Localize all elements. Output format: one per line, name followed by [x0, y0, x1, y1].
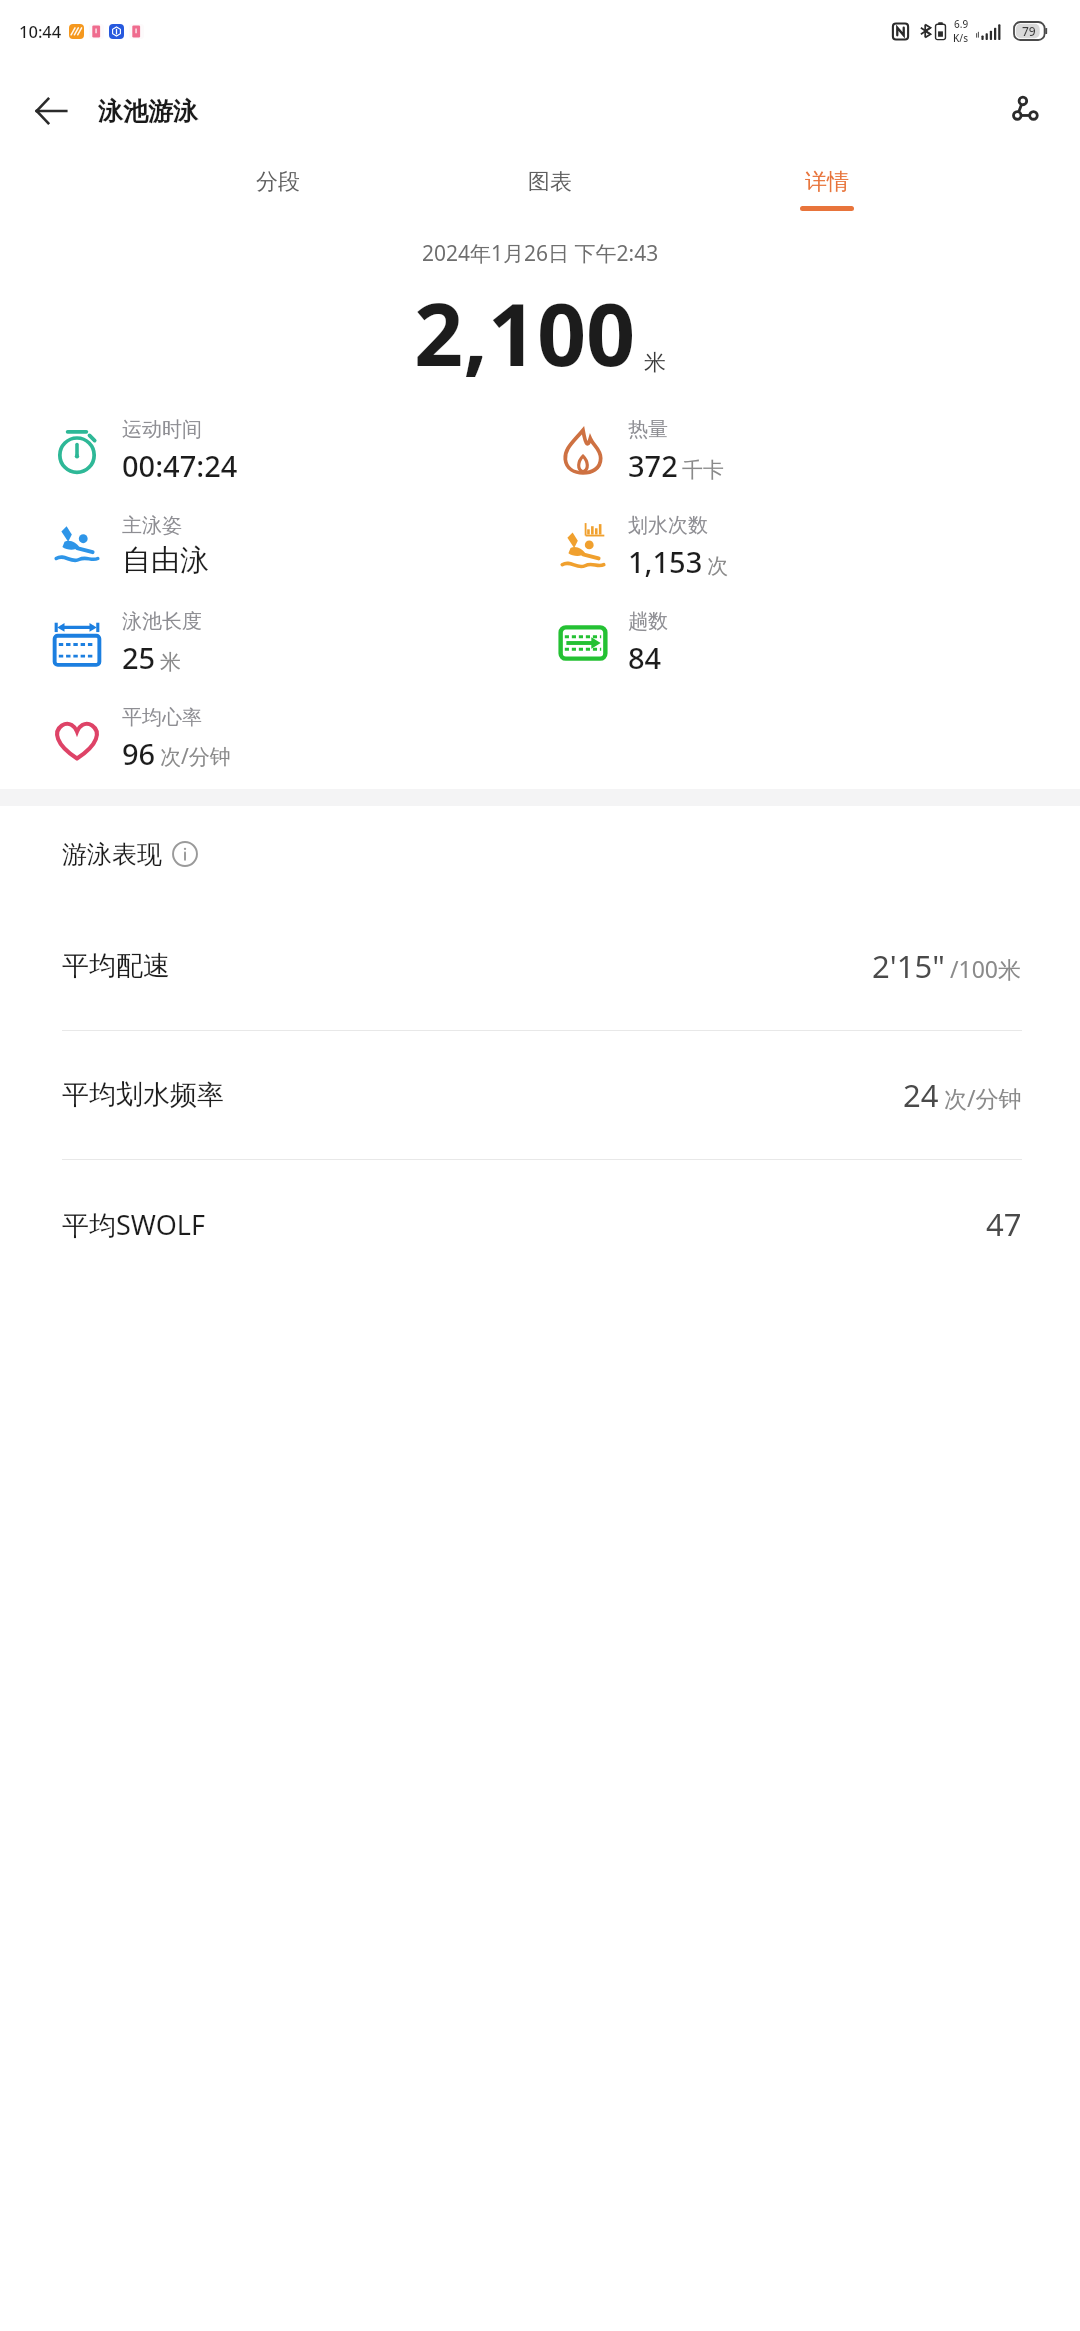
staticText: 25	[122, 638, 156, 677]
staticText: 详情	[805, 168, 849, 196]
button[interactable]: 详情	[794, 160, 860, 219]
button[interactable]: 平均心率	[48, 705, 231, 773]
staticText: 2,100	[414, 274, 636, 391]
button[interactable]: 分段	[250, 160, 306, 219]
staticText: 次/分钟	[160, 742, 231, 771]
button[interactable]: 趟数	[554, 609, 668, 677]
staticText: 次/分钟	[944, 1082, 1022, 1113]
staticText: 平均SWOLF	[62, 1206, 205, 1243]
staticText: 平均心率	[122, 705, 202, 730]
staticText: 米	[160, 649, 181, 675]
staticText: 次	[707, 553, 728, 579]
staticText: 2024年1月26日 下午2:43	[422, 239, 659, 268]
button[interactable]: 划水次数	[554, 513, 728, 581]
button[interactable]: 图表	[522, 160, 578, 219]
staticText: 米	[644, 349, 666, 377]
button[interactable]: 游泳表现	[0, 806, 1080, 902]
staticText: /100米	[950, 953, 1022, 984]
other: Info	[172, 841, 198, 867]
staticText: 运动时间	[122, 417, 202, 442]
button[interactable]: 平均SWOLF	[0, 1160, 1080, 1288]
staticText: 84	[628, 638, 662, 677]
staticText: 图表	[528, 168, 572, 196]
staticText: 游泳表现	[62, 839, 162, 870]
button[interactable]: 主泳姿	[48, 513, 209, 579]
button[interactable]: Share	[1000, 82, 1058, 140]
staticText: 主泳姿	[122, 513, 182, 538]
staticText: 平均配速	[62, 949, 170, 983]
staticText: 热量	[628, 417, 668, 442]
button[interactable]: 热量	[554, 417, 724, 485]
button[interactable]: 平均划水频率	[0, 1031, 1080, 1160]
staticText: 24	[903, 1074, 939, 1116]
staticText: 分段	[256, 168, 300, 196]
staticText: 趟数	[628, 609, 668, 634]
staticText: 划水次数	[628, 513, 708, 538]
staticText: 泳池游泳	[98, 96, 198, 127]
staticText: 00:47:24	[122, 446, 238, 485]
staticText: 自由泳	[122, 542, 209, 579]
staticText: 372	[628, 446, 678, 485]
staticText: K/s	[953, 31, 969, 45]
staticText: 6.9	[954, 17, 969, 31]
staticText: 平均划水频率	[62, 1078, 224, 1112]
staticText: 10:44	[19, 20, 62, 42]
staticText: 泳池长度	[122, 609, 202, 634]
staticText: 1,153	[628, 542, 703, 581]
button[interactable]: 平均配速	[0, 902, 1080, 1031]
staticText: 千卡	[682, 457, 724, 483]
staticText: 79	[1022, 23, 1036, 39]
staticText: 47	[986, 1203, 1022, 1245]
staticText: 2'15"	[872, 945, 945, 987]
button[interactable]: Back	[22, 82, 80, 140]
staticText: 96	[122, 734, 156, 773]
button[interactable]: 运动时间	[48, 417, 238, 485]
button[interactable]: 泳池长度	[48, 609, 202, 677]
